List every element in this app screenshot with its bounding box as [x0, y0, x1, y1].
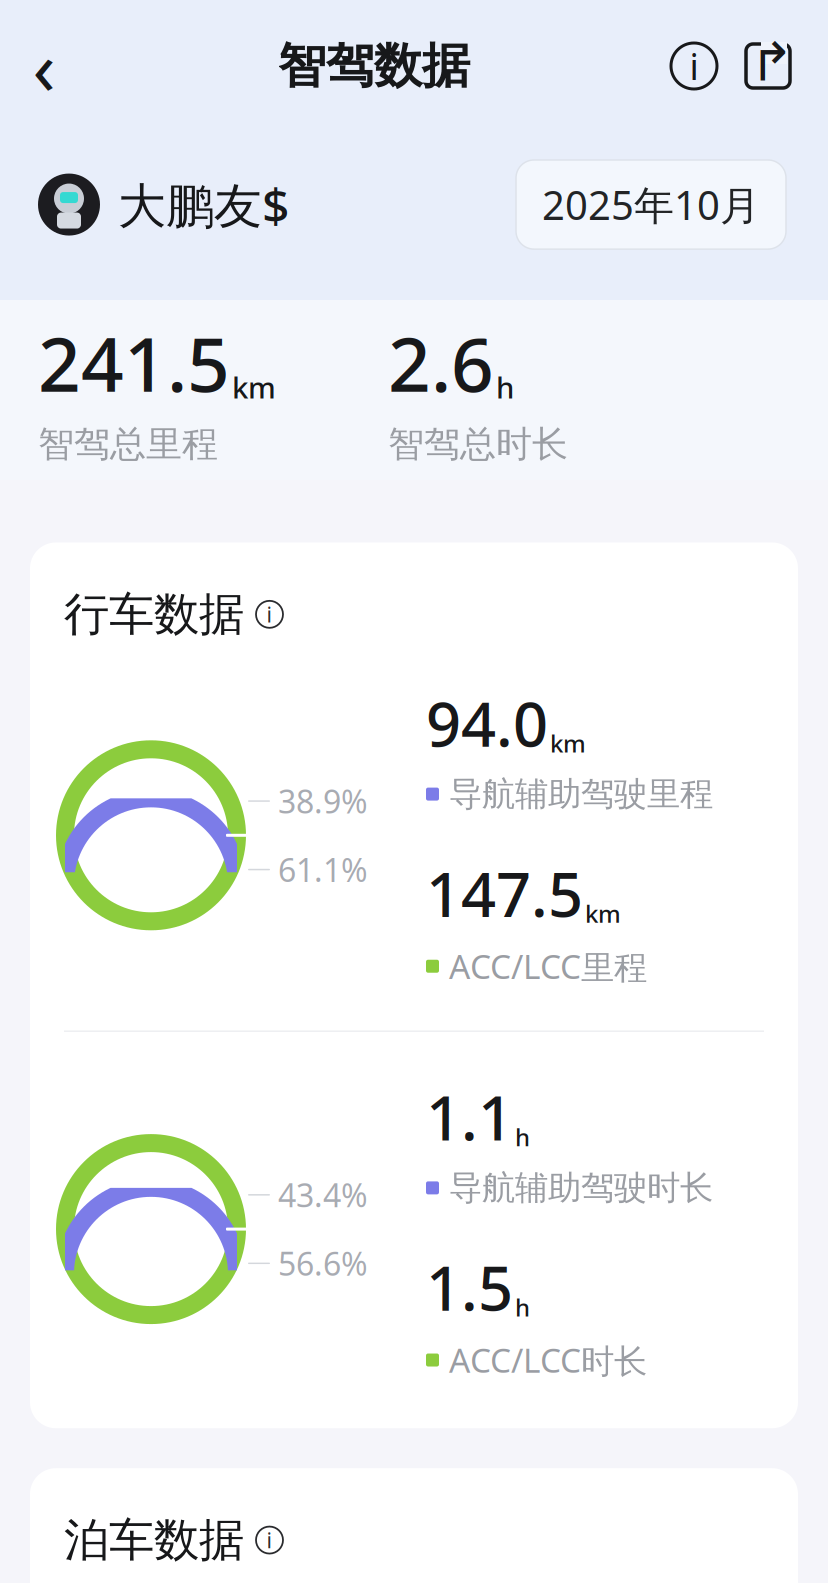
staticText: h [515, 1291, 530, 1323]
staticText: 智驾总时长 [388, 422, 568, 466]
staticText: 147.5 [426, 853, 583, 934]
staticText: 导航辅助驾驶里程 [449, 774, 713, 814]
staticText: km [232, 368, 276, 407]
staticText: 2025年10月 [542, 178, 760, 231]
staticText: 2.6 [388, 313, 494, 412]
staticText: ACC/LCC时长 [449, 1338, 647, 1382]
staticText: h [515, 1121, 530, 1153]
button[interactable]: 用户 大鹏友 [38, 173, 289, 236]
staticText: i [266, 600, 272, 628]
staticText: ↱ [749, 32, 794, 92]
staticText: h [496, 368, 514, 407]
button[interactable]: 说明 [660, 28, 728, 104]
button[interactable]: 分享 [728, 28, 808, 104]
staticText: 241.5 [38, 313, 230, 412]
button[interactable]: 关于泊车数据 [256, 1527, 283, 1554]
staticText: km [550, 727, 586, 759]
staticText: 1.1 [426, 1076, 513, 1157]
button[interactable]: 2025年10月 [516, 160, 786, 249]
staticText: 61.1% [278, 848, 368, 891]
staticText: 1.5 [426, 1246, 513, 1328]
staticText: 38.9% [278, 780, 368, 822]
staticText: ‹ [32, 16, 55, 116]
staticText: 大鹏友$ [118, 173, 289, 236]
staticText: ACC/LCC里程 [449, 944, 647, 988]
button[interactable]: 关于行车数据 [256, 601, 283, 628]
staticText: 智驾总里程 [38, 422, 218, 466]
staticText: 行车数据 [64, 586, 244, 642]
staticText: 94.0 [426, 682, 548, 764]
staticText: km [585, 897, 621, 929]
staticText: 泊车数据 [64, 1512, 244, 1568]
staticText: 56.6% [278, 1242, 368, 1285]
staticText: 导航辅助驾驶时长 [449, 1167, 713, 1208]
button[interactable]: 返回 [0, 28, 88, 104]
staticText: i [689, 42, 698, 90]
staticText: 智驾数据 [278, 36, 470, 95]
staticText: i [266, 1526, 272, 1554]
staticText: 43.4% [278, 1174, 368, 1216]
